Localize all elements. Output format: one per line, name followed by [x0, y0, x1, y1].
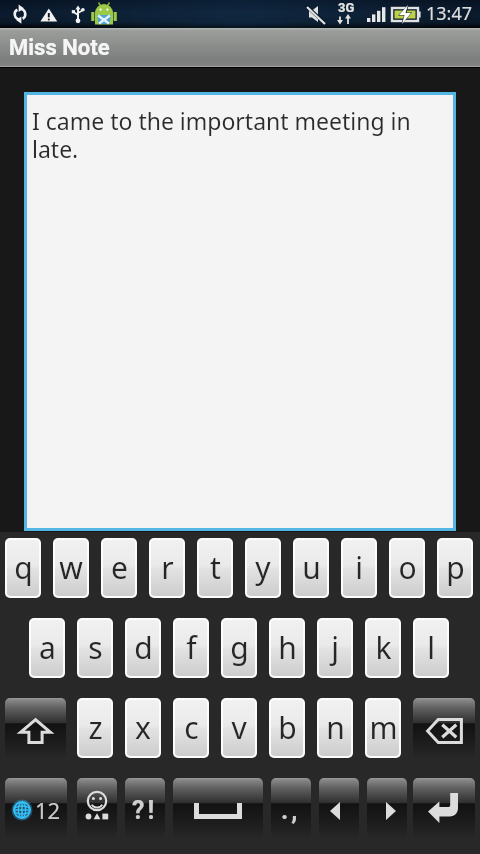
button[interactable]: l [415, 620, 447, 676]
button[interactable]: v [223, 700, 255, 756]
button[interactable]: h [271, 620, 303, 676]
button[interactable]: Enter [413, 778, 475, 838]
staticText: o [398, 547, 417, 588]
button[interactable]: i [343, 540, 375, 596]
staticText: 12 [35, 795, 61, 825]
button[interactable]: Symbols [125, 778, 165, 838]
button[interactable]: a [31, 620, 63, 676]
staticText: y [255, 547, 271, 588]
staticText: Miss Note [9, 35, 110, 61]
button[interactable]: q [7, 540, 39, 596]
staticText: g [230, 627, 249, 668]
button[interactable]: Miss Note [0, 28, 480, 67]
button[interactable]: g [223, 620, 255, 676]
staticText: w [59, 547, 83, 588]
button[interactable]: n [319, 700, 351, 756]
staticText: a [39, 627, 56, 668]
button[interactable]: f [175, 620, 207, 676]
button[interactable]: r [151, 540, 183, 596]
staticText: c [184, 707, 199, 748]
staticText: s [88, 627, 103, 668]
staticText: u [302, 547, 321, 588]
button[interactable]: y [247, 540, 279, 596]
button[interactable]: t [199, 540, 231, 596]
staticText: p [446, 547, 465, 588]
button[interactable]: k [367, 620, 399, 676]
button[interactable]: I came to the important meeting in late. [27, 95, 453, 528]
button[interactable]: c [175, 700, 207, 756]
staticText: d [134, 627, 153, 668]
staticText: e [111, 547, 128, 588]
staticText: v [231, 707, 247, 748]
button[interactable]: Space [173, 778, 263, 838]
staticText: x [135, 707, 151, 748]
staticText: m [369, 707, 398, 748]
staticText: n [326, 707, 345, 748]
staticText: z [88, 707, 103, 748]
button[interactable]: Period and comma [271, 778, 311, 838]
button[interactable]: m [367, 700, 399, 756]
staticText: 13:47 [426, 1, 473, 26]
staticText: t [210, 547, 221, 588]
staticText: 3G [338, 0, 355, 15]
staticText: i [355, 547, 363, 588]
staticText: k [375, 627, 392, 668]
staticText: I came to the important meeting in late. [32, 105, 435, 165]
button[interactable]: p [439, 540, 471, 596]
button[interactable]: z [79, 700, 111, 756]
staticText: f [186, 627, 197, 668]
staticText: q [14, 547, 33, 588]
button[interactable]: Change language [5, 778, 67, 838]
button[interactable]: o [391, 540, 423, 596]
staticText: h [278, 627, 297, 668]
staticText: l [427, 627, 435, 668]
button[interactable]: s [79, 620, 111, 676]
staticText: ?! [132, 796, 158, 825]
button[interactable]: Shift [5, 698, 66, 758]
button[interactable]: w [55, 540, 87, 596]
button[interactable]: Cursor left [319, 778, 359, 838]
button[interactable]: u [295, 540, 327, 596]
button[interactable]: Backspace [413, 698, 475, 758]
button[interactable]: d [127, 620, 159, 676]
button[interactable]: Cursor right [367, 778, 407, 838]
staticText: ., [281, 796, 301, 825]
staticText: r [161, 547, 174, 588]
button[interactable]: Emoji [77, 778, 117, 838]
staticText: b [278, 707, 297, 748]
button[interactable]: x [127, 700, 159, 756]
staticText: j [331, 627, 339, 668]
button[interactable]: j [319, 620, 351, 676]
button[interactable]: e [103, 540, 135, 596]
button[interactable]: b [271, 700, 303, 756]
